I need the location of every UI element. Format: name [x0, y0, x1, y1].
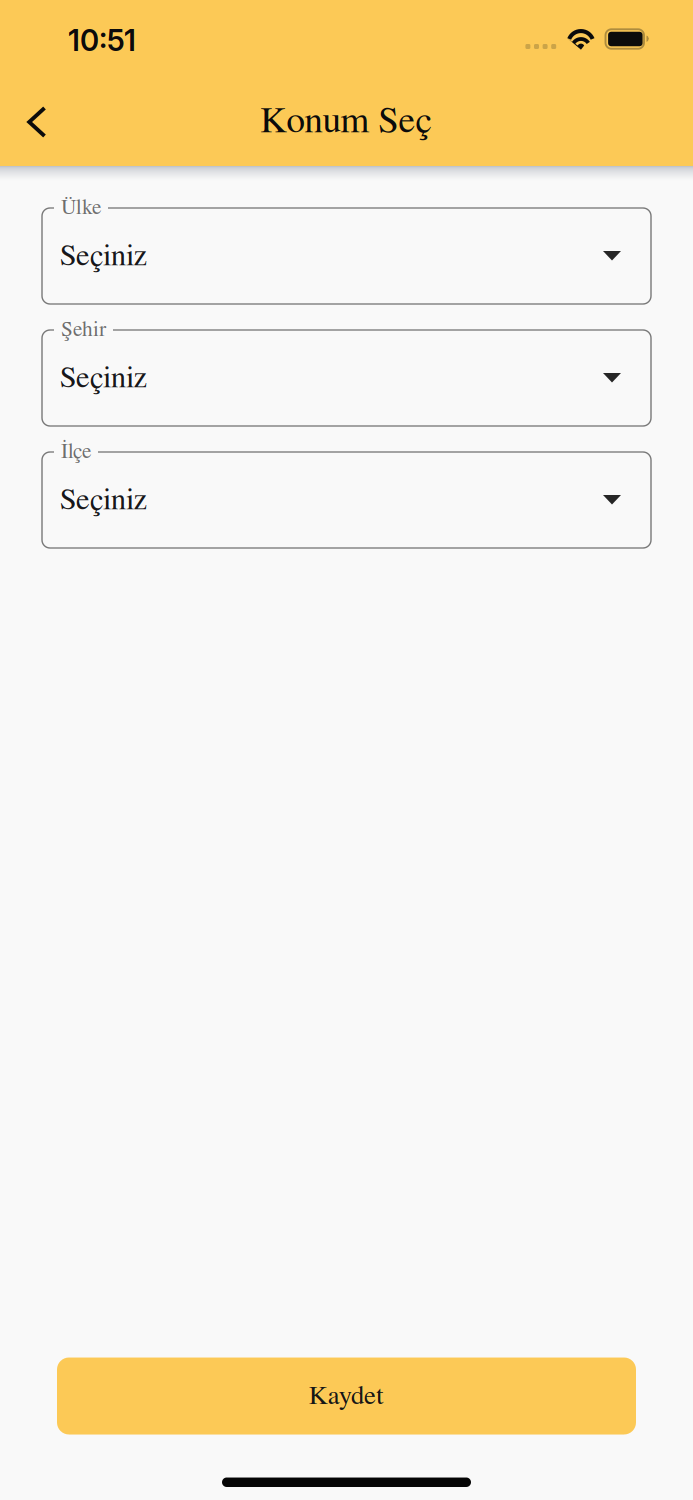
staticText: Kaydet — [309, 1383, 384, 1409]
staticText: Konum Seç — [260, 102, 432, 140]
staticText: Şehir — [61, 319, 106, 340]
staticText: İlçe — [61, 441, 91, 462]
staticText: Seçiniz — [60, 485, 147, 515]
button[interactable]: Seçiniz — [42, 208, 651, 304]
staticText: 10:51 — [68, 22, 136, 58]
button[interactable]: Back — [10, 86, 64, 150]
staticText: Seçiniz — [60, 241, 147, 271]
button[interactable]: Seçiniz — [42, 452, 651, 548]
button[interactable]: Seçiniz — [42, 330, 651, 426]
staticText: Ülke — [61, 197, 101, 218]
staticText: Seçiniz — [60, 363, 147, 393]
button[interactable]: Kaydet — [57, 1357, 636, 1434]
